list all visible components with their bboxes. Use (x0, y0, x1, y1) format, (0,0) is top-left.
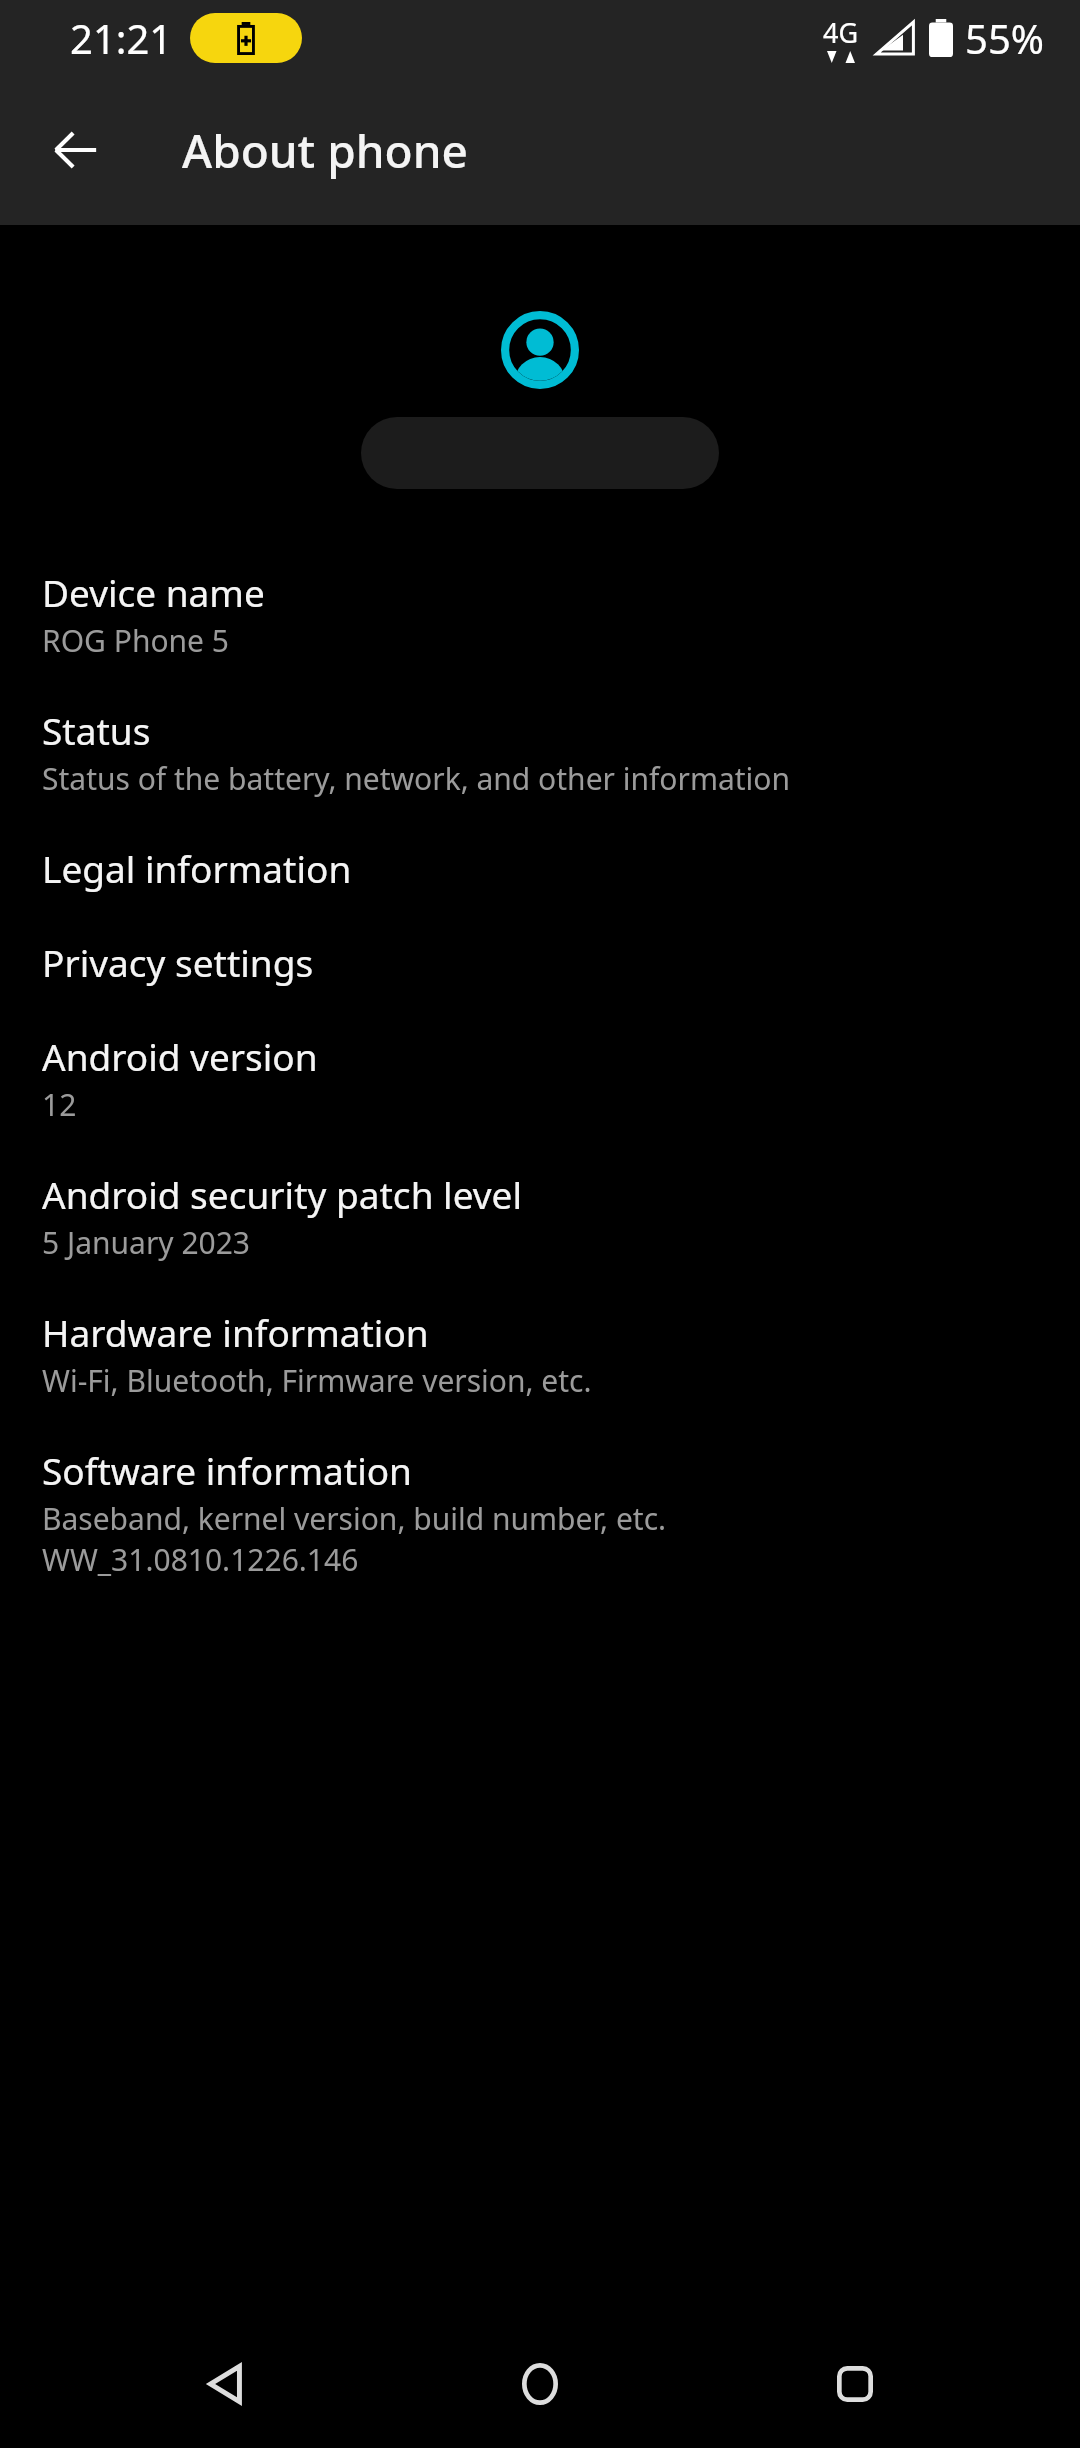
button[interactable]: Android security patch level (0, 1147, 1080, 1285)
staticText: Baseband, kernel version, build number, … (42, 1498, 667, 1539)
staticText: Privacy settings (42, 937, 314, 987)
staticText: 55% (965, 11, 1044, 65)
button[interactable]: Android version (0, 1009, 1080, 1147)
staticText: About phone (182, 119, 468, 182)
staticText: Android version (42, 1031, 318, 1081)
button[interactable]: Back (135, 2320, 315, 2448)
button[interactable]: Status (0, 683, 1080, 821)
button[interactable]: Device name (0, 545, 1080, 683)
staticText: 4G (823, 14, 859, 51)
button[interactable]: Recent apps (765, 2320, 945, 2448)
button[interactable]: Battery saver on (190, 13, 302, 63)
staticText: Android security patch level (42, 1169, 523, 1219)
staticText: Wi-Fi, Bluetooth, Firmware version, etc. (42, 1360, 592, 1401)
staticText: 21:21 (70, 11, 173, 65)
staticText: Status (42, 705, 151, 755)
staticText: Software information (42, 1445, 412, 1495)
button[interactable]: Home (450, 2320, 630, 2448)
button[interactable]: Hardware information (0, 1285, 1080, 1423)
staticText: Device name (42, 567, 265, 617)
staticText: Hardware information (42, 1307, 429, 1357)
staticText: 12 (42, 1084, 77, 1125)
button[interactable]: Software information (0, 1423, 1080, 1602)
staticText: WW_31.0810.1226.146 (42, 1539, 359, 1580)
staticText: Legal information (42, 843, 352, 893)
button[interactable]: Legal information (0, 821, 1080, 915)
button[interactable]: Privacy settings (0, 915, 1080, 1009)
staticText: ROG Phone 5 (42, 620, 229, 661)
staticText: 5 January 2023 (42, 1222, 251, 1263)
staticText: Status of the battery, network, and othe… (42, 758, 791, 799)
button[interactable]: Navigate up (27, 102, 123, 198)
